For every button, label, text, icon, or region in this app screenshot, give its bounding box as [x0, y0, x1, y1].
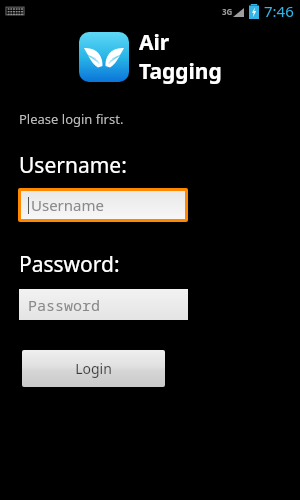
button[interactable]: Password	[19, 289, 188, 320]
staticText: Password:	[19, 250, 120, 279]
staticText: Tagging	[139, 57, 222, 86]
staticText: Password	[28, 295, 101, 315]
staticText: 3G	[222, 6, 233, 17]
staticText: 7:46	[264, 1, 294, 21]
button[interactable]: Username	[18, 188, 188, 222]
button[interactable]: Login	[22, 350, 165, 387]
staticText: Air	[139, 28, 170, 57]
staticText: Please login first.	[19, 110, 124, 128]
staticText: Username	[31, 195, 104, 215]
staticText: Login	[75, 359, 112, 378]
staticText: Username:	[19, 151, 127, 180]
